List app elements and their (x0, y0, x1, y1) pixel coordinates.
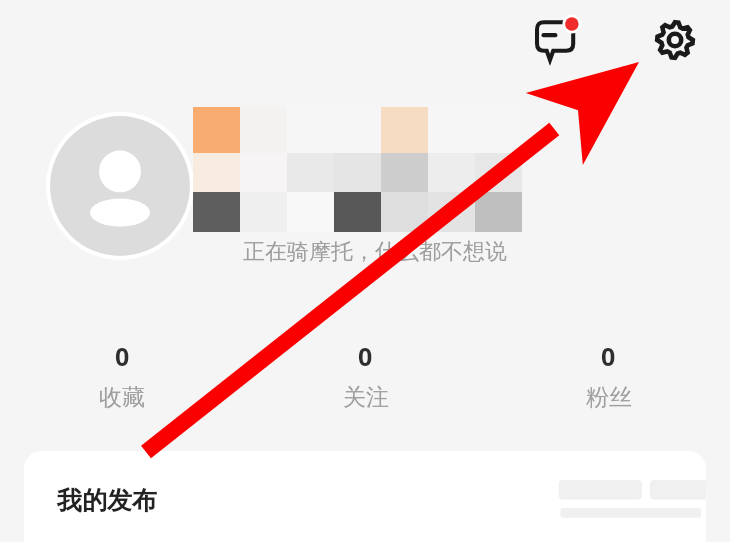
button[interactable]: 0 (487, 335, 730, 416)
staticText: 关注 (343, 383, 389, 412)
button[interactable]: 0 (0, 335, 244, 416)
staticText: 我的发布 (57, 485, 157, 516)
button[interactable]: 正在骑摩托，什么都不想说 (180, 238, 570, 266)
staticText: 收藏 (99, 383, 145, 412)
button[interactable]: Profile avatar (46, 112, 194, 260)
button[interactable]: 0 (244, 335, 487, 416)
staticText: 0 (601, 339, 616, 373)
staticText: 0 (358, 339, 373, 373)
staticText: 粉丝 (586, 383, 632, 412)
staticText: 0 (115, 339, 130, 373)
button[interactable]: Settings (648, 13, 702, 67)
staticText: 正在骑摩托，什么都不想说 (180, 238, 570, 266)
button[interactable]: Messages (530, 13, 584, 67)
